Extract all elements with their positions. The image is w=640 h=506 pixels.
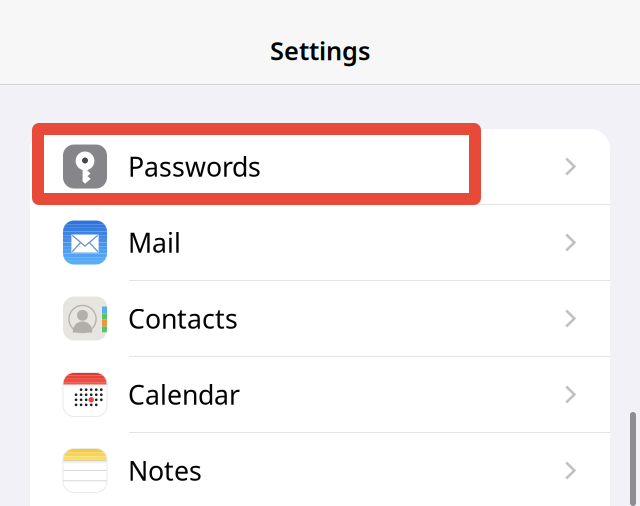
staticText: Settings xyxy=(270,34,370,67)
button[interactable]: Calendar xyxy=(30,357,610,433)
staticText: Passwords xyxy=(128,149,261,184)
button[interactable]: Mail xyxy=(30,205,610,281)
staticText: Calendar xyxy=(128,377,240,412)
button[interactable]: Passwords xyxy=(30,129,610,205)
button[interactable]: Contacts xyxy=(30,281,610,357)
staticText: Contacts xyxy=(128,301,238,336)
staticText: Notes xyxy=(128,453,202,488)
button[interactable]: Notes xyxy=(30,433,610,506)
staticText: Mail xyxy=(128,225,181,260)
